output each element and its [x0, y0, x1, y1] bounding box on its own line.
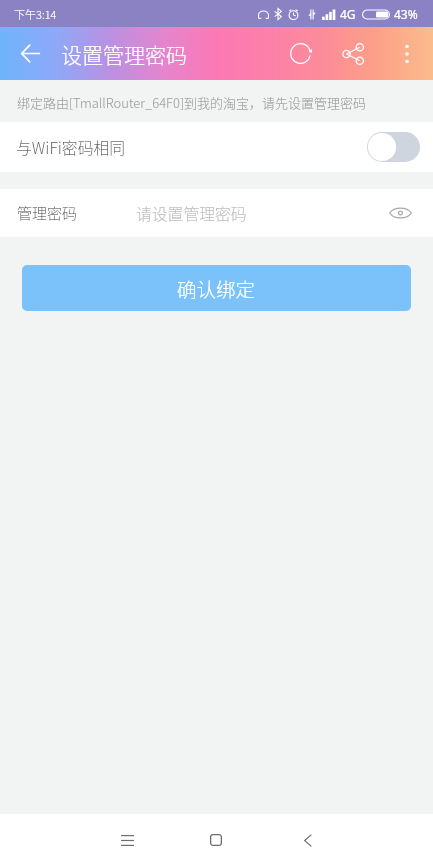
staticText: 确认绑定 — [177, 274, 256, 302]
staticText: 43% — [394, 6, 418, 22]
button[interactable]: More options — [384, 31, 429, 76]
button[interactable]: Refresh — [278, 31, 323, 76]
button[interactable]: Share — [331, 31, 376, 76]
button[interactable]: Same as WiFi password — [367, 132, 420, 162]
button[interactable]: 与WiFi密码相同 — [0, 122, 433, 172]
button[interactable]: Home — [192, 816, 240, 864]
staticText: 管理密码 — [17, 202, 78, 224]
staticText: 请设置管理密码 — [136, 202, 247, 225]
button[interactable]: Show password — [385, 198, 415, 228]
staticText: 下午3:14 — [14, 6, 57, 22]
staticText: 4G — [340, 6, 356, 22]
button[interactable]: Back — [284, 816, 332, 864]
button[interactable]: Back — [8, 31, 53, 76]
button[interactable]: 管理密码 — [0, 189, 433, 237]
staticText: 绑定路由[TmallRouter_64F0]到我的淘宝，请先设置管理密码 — [17, 93, 367, 112]
button[interactable]: 确认绑定 — [22, 265, 411, 311]
button[interactable]: Recent apps — [103, 816, 151, 864]
staticText: 设置管理密码 — [61, 39, 187, 69]
staticText: 与WiFi密码相同 — [16, 136, 126, 159]
